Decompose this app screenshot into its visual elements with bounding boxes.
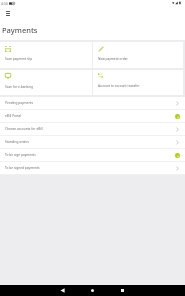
staticText: To be signed payments — [5, 166, 40, 170]
button[interactable]: Pending payments — [0, 97, 185, 110]
button[interactable]: eBill Portal — [0, 110, 185, 123]
staticText: Standing orders — [5, 140, 29, 144]
staticText: Scan for e-banking — [5, 85, 34, 89]
staticText: To be sign payments — [5, 153, 36, 157]
staticText: Pending payments — [5, 101, 34, 105]
staticText: New payment order — [98, 57, 128, 61]
staticText: Choose accounts for eBill — [5, 127, 43, 131]
button[interactable]: Scan for e-banking — [0, 70, 92, 95]
button[interactable]: Standing orders — [0, 136, 185, 149]
staticText: Account to account transfer — [98, 84, 140, 88]
staticText: Payments — [2, 25, 38, 35]
button[interactable]: Home — [87, 285, 98, 296]
button[interactable]: Scan payment slip — [0, 42, 92, 68]
staticText: eBill Portal — [5, 114, 22, 118]
button[interactable]: To be signed payments — [0, 162, 185, 175]
button[interactable]: To be sign payments — [0, 149, 185, 162]
button[interactable]: Choose accounts for eBill — [0, 123, 185, 136]
staticText: Scan payment slip — [5, 57, 33, 61]
button[interactable]: Account to account transfer — [93, 70, 183, 95]
button[interactable]: Recents — [117, 285, 128, 296]
staticText: 4:34 — [1, 1, 8, 6]
button[interactable]: Menu — [3, 9, 12, 18]
button[interactable]: Back — [57, 285, 68, 296]
button[interactable]: New payment order — [93, 42, 183, 68]
